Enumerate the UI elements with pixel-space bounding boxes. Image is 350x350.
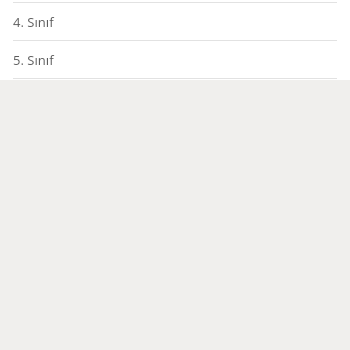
button[interactable]: 4. Sınıf bbox=[0, 3, 350, 40]
button[interactable]: 5. Sınıf bbox=[0, 41, 350, 78]
staticText: 5. Sınıf bbox=[13, 51, 54, 69]
staticText: 4. Sınıf bbox=[13, 13, 54, 31]
